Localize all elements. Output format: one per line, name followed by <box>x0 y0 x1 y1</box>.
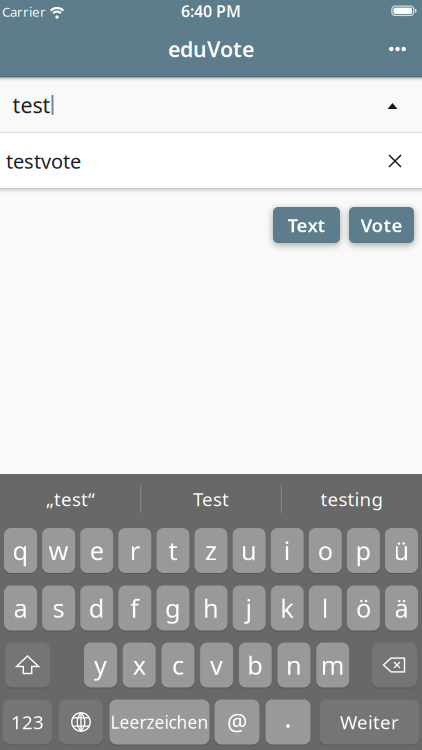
button[interactable]: o <box>309 528 342 573</box>
button[interactable]: j <box>233 585 266 630</box>
button[interactable]: f <box>118 585 151 630</box>
staticText: 6:40 PM <box>181 0 241 22</box>
button[interactable]: k <box>271 585 304 630</box>
button[interactable]: ä <box>385 585 418 630</box>
staticText: j <box>246 591 253 625</box>
staticText: a <box>13 591 27 625</box>
staticText: d <box>89 591 105 625</box>
button[interactable]: @ <box>214 699 259 744</box>
staticText: ü <box>393 534 409 567</box>
button[interactable]: v <box>200 642 233 687</box>
staticText: q <box>12 534 28 567</box>
staticText: n <box>286 648 302 682</box>
button[interactable]: h <box>194 585 227 630</box>
staticText: 123 <box>11 710 44 734</box>
staticText: Carrier <box>2 3 46 20</box>
staticText: Weiter <box>340 710 399 734</box>
button[interactable]: „test“ <box>1 474 139 524</box>
button[interactable]: b <box>239 642 272 687</box>
button[interactable]: u <box>233 528 266 573</box>
button[interactable]: q <box>4 528 37 573</box>
button[interactable]: y <box>84 642 117 687</box>
staticText: Text <box>287 213 325 237</box>
button[interactable]: i <box>271 528 304 573</box>
staticText: o <box>318 534 333 567</box>
button[interactable]: Text <box>273 207 340 243</box>
button[interactable]: Collapse suggestions <box>373 89 411 123</box>
button[interactable]: p <box>347 528 380 573</box>
staticText: b <box>247 648 263 682</box>
staticText: i <box>284 534 291 567</box>
button[interactable]: More <box>375 22 419 76</box>
staticText: Leerzeichen <box>110 710 208 733</box>
staticText: testvote <box>6 148 81 174</box>
button[interactable]: Period <box>265 699 310 744</box>
button[interactable]: testing <box>282 474 420 524</box>
staticText: eduVote <box>168 35 254 63</box>
button[interactable]: testvote <box>0 133 422 188</box>
staticText: l <box>322 591 329 625</box>
button[interactable]: Weiter <box>319 699 419 744</box>
button[interactable]: g <box>156 585 189 630</box>
staticText: r <box>130 534 140 567</box>
button[interactable]: m <box>316 642 349 687</box>
staticText: z <box>205 534 217 567</box>
button[interactable]: e <box>80 528 113 573</box>
staticText: Vote <box>360 213 402 237</box>
staticText: testing <box>320 487 382 511</box>
staticText: ä <box>394 591 408 625</box>
staticText: Test <box>193 487 229 511</box>
button[interactable]: ü <box>385 528 418 573</box>
button[interactable]: Test <box>142 474 280 524</box>
button[interactable]: Next keyboard <box>59 699 103 744</box>
staticText: u <box>241 534 257 567</box>
staticText: e <box>90 534 104 567</box>
staticText: @ <box>227 707 247 737</box>
button[interactable]: Remove suggestion <box>377 143 413 179</box>
staticText: y <box>94 648 107 682</box>
staticText: w <box>49 534 69 567</box>
button[interactable]: Leerzeichen <box>109 699 209 744</box>
staticText: ö <box>356 591 371 625</box>
staticText: c <box>172 648 184 682</box>
button[interactable]: w <box>42 528 75 573</box>
staticText: h <box>203 591 219 625</box>
button[interactable]: t <box>156 528 189 573</box>
staticText: „test“ <box>46 487 95 511</box>
staticText: p <box>355 534 371 567</box>
staticText: m <box>321 648 345 682</box>
staticText: k <box>280 591 294 625</box>
button[interactable]: Delete <box>372 642 417 687</box>
button[interactable]: r <box>118 528 151 573</box>
button[interactable]: c <box>161 642 194 687</box>
button[interactable]: l <box>309 585 342 630</box>
button[interactable]: Vote <box>349 207 414 243</box>
button[interactable]: ö <box>347 585 380 630</box>
staticText: g <box>165 591 181 625</box>
button[interactable]: 123 <box>3 699 52 744</box>
button[interactable]: z <box>194 528 227 573</box>
staticText: x <box>133 648 146 682</box>
button[interactable]: x <box>123 642 156 687</box>
button[interactable]: n <box>277 642 310 687</box>
button[interactable]: a <box>4 585 37 630</box>
staticText: test <box>12 91 50 119</box>
button[interactable]: Shift <box>5 642 50 687</box>
button[interactable]: d <box>80 585 113 630</box>
staticText: f <box>130 591 139 625</box>
staticText: v <box>210 648 223 682</box>
staticText: t <box>168 534 177 567</box>
staticText: s <box>53 591 65 625</box>
button[interactable]: s <box>42 585 75 630</box>
